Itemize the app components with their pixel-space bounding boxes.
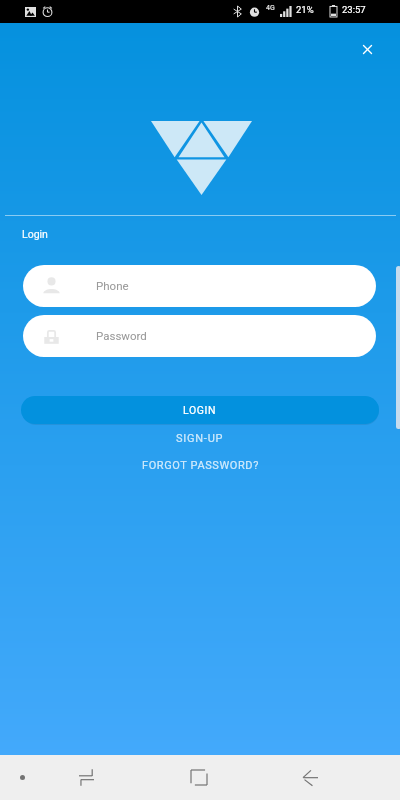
- staticText: SIGN-UP: [176, 432, 224, 445]
- staticText: Login: [22, 228, 48, 240]
- staticText: 21%: [296, 4, 314, 15]
- button[interactable]: FORGOT PASSWORD?: [0, 457, 400, 474]
- button[interactable]: Back: [290, 755, 330, 800]
- button[interactable]: Phone: [23, 265, 376, 307]
- staticText: 23:57: [342, 4, 366, 15]
- button[interactable]: Home: [179, 755, 219, 800]
- button[interactable]: Recent apps: [66, 755, 106, 800]
- button[interactable]: Password: [23, 315, 376, 357]
- staticText: Password: [96, 329, 147, 342]
- staticText: FORGOT PASSWORD?: [142, 459, 259, 472]
- button[interactable]: LOGIN: [21, 396, 379, 424]
- staticText: LOGIN: [183, 404, 217, 416]
- button[interactable]: Close: [355, 37, 379, 61]
- button[interactable]: SIGN-UP: [0, 430, 400, 447]
- staticText: Phone: [96, 279, 129, 292]
- staticText: 4G: [266, 4, 275, 12]
